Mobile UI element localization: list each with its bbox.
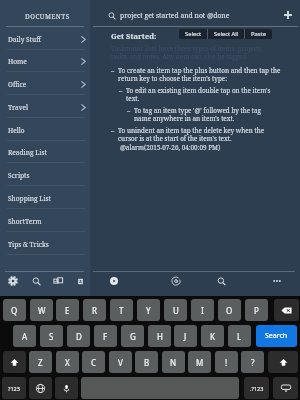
button[interactable]: R [83, 299, 106, 321]
staticText: B [144, 357, 150, 368]
button[interactable]: B [135, 351, 158, 373]
button[interactable]: Documents [49, 272, 67, 290]
button[interactable]: N [162, 351, 185, 373]
staticText: Daily Stuff [8, 35, 41, 44]
button[interactable]: V [109, 351, 132, 373]
button[interactable]: Shift [3, 351, 26, 373]
button[interactable]: Search [106, 10, 117, 21]
button[interactable]: J [174, 325, 197, 347]
button[interactable]: Settings [4, 272, 22, 290]
button[interactable]: C [82, 351, 105, 373]
staticText: Get Started: [111, 31, 157, 41]
staticText: Z [38, 357, 43, 368]
staticText: Select [185, 30, 202, 38]
button[interactable]: U [164, 299, 187, 321]
button[interactable]: P [245, 299, 268, 321]
staticText: O [226, 305, 233, 316]
button[interactable]: W [30, 299, 53, 321]
button[interactable]: Backspace [274, 299, 299, 321]
button[interactable]: .?123 [244, 377, 269, 399]
staticText: .?123 [250, 385, 264, 392]
button[interactable]: Find [212, 272, 230, 290]
button[interactable]: Search [27, 272, 45, 290]
staticText: K [210, 331, 215, 342]
staticText: V [118, 357, 123, 368]
button[interactable]: Change language [29, 377, 52, 399]
button[interactable]: Select [179, 29, 207, 39]
staticText: Search [265, 331, 288, 341]
button[interactable]: S [40, 325, 63, 347]
button[interactable]: Home [0, 50, 90, 72]
button[interactable]: Hide keyboard [273, 377, 298, 399]
button[interactable]: Office [0, 73, 90, 95]
staticText: Reading List [8, 148, 47, 157]
button[interactable]: ?123 [2, 377, 26, 399]
button[interactable]: E [56, 299, 79, 321]
button[interactable]: M [188, 351, 211, 373]
staticText: S [49, 331, 54, 342]
staticText: I [201, 305, 204, 316]
button[interactable]: Daily Stuff [0, 28, 90, 50]
staticText: ?123 [8, 385, 20, 392]
staticText: E [65, 305, 70, 316]
button[interactable]: Q [3, 299, 26, 321]
staticText: X [65, 357, 70, 368]
button[interactable]: K [201, 325, 224, 347]
staticText: Hello [8, 126, 25, 135]
staticText: Paste [251, 30, 266, 38]
staticText: A [22, 331, 28, 342]
button[interactable]: Travel [0, 96, 90, 118]
button[interactable]: Shopping List [0, 187, 90, 209]
staticText: – [111, 126, 115, 135]
staticText: L [237, 331, 242, 342]
staticText: Y [146, 305, 151, 316]
staticText: – [119, 86, 123, 95]
staticText: @alarm(2015-07-26, 04:00:09 PM) [120, 143, 221, 152]
staticText: ! [225, 357, 228, 368]
button[interactable]: Tags [167, 272, 185, 290]
button[interactable]: Scripts [0, 164, 90, 186]
staticText: Q [11, 305, 18, 316]
staticText: M [196, 357, 204, 368]
button[interactable]: I [191, 299, 214, 321]
button[interactable]: ? [241, 351, 264, 373]
button[interactable]: O [218, 299, 241, 321]
button[interactable]: F [94, 325, 117, 347]
button[interactable]: ! [215, 351, 238, 373]
staticText: Shopping List [8, 194, 51, 203]
button[interactable]: X [56, 351, 79, 373]
staticText: T [119, 305, 124, 316]
button[interactable]: Z [29, 351, 52, 373]
button[interactable]: ShortTerm [0, 210, 90, 232]
staticText: J [184, 331, 187, 342]
button[interactable]: Shift [268, 351, 298, 373]
button[interactable]: G [121, 325, 144, 347]
staticText: C [91, 357, 97, 368]
button[interactable]: T [110, 299, 133, 321]
staticText: G [130, 331, 136, 342]
staticText: H [157, 331, 163, 342]
button[interactable]: L [228, 325, 251, 347]
staticText: To tag an item type '@' followed by the … [134, 106, 277, 123]
button[interactable]: Reading List [0, 141, 90, 163]
button[interactable]: New file [71, 272, 89, 290]
button[interactable]: Tips & Tricks [0, 233, 90, 255]
button[interactable]: Hello [0, 119, 90, 141]
button[interactable]: A [13, 325, 36, 347]
button[interactable]: More options [268, 272, 286, 290]
staticText: ? [251, 357, 255, 368]
staticText: To unindent an item tap the delete key w… [118, 126, 281, 143]
button[interactable]: Select All [208, 29, 244, 39]
button[interactable]: H [148, 325, 171, 347]
button[interactable]: Paste [245, 29, 272, 39]
staticText: To create an item tap the plus button an… [118, 66, 281, 83]
button[interactable]: Y [137, 299, 160, 321]
button[interactable]: Search [256, 325, 297, 347]
staticText: Select All [214, 30, 239, 38]
button[interactable]: Run [105, 272, 123, 290]
staticText: F [103, 331, 108, 342]
button[interactable]: Add item [280, 7, 296, 23]
button[interactable]: Voice input [55, 377, 78, 399]
button[interactable]: D [67, 325, 90, 347]
